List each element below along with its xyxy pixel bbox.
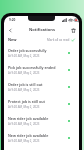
staticText: Mark all as read <box>47 38 70 42</box>
staticText: At 9:20 AM, May 2, 2023 <box>8 88 40 92</box>
staticText: At 9:20 AM, May 2, 2023 <box>8 105 40 109</box>
staticText: New rider job available <box>8 133 49 138</box>
staticText: New <box>8 37 17 42</box>
button[interactable]: Protect job is still out <box>4 95 79 112</box>
staticText: At 9:20 AM, May 2, 2023 <box>8 122 40 126</box>
staticText: At 9:20 AM, May 2, 2023 <box>8 54 40 58</box>
staticText: Order job is still out <box>8 82 43 87</box>
button[interactable]: New rider job available <box>4 129 79 146</box>
button[interactable]: Back <box>6 26 14 34</box>
button[interactable]: Pick job successfully ended <box>4 61 79 78</box>
staticText: 9:20 <box>9 18 16 22</box>
button[interactable]: Order job is still out <box>4 78 79 95</box>
staticText: Protect job is still out <box>8 99 46 104</box>
staticText: At 9:20 AM, May 2, 2023 <box>8 139 40 143</box>
button[interactable]: Order job successfully <box>4 44 79 61</box>
button[interactable]: New rider job available <box>4 112 79 129</box>
staticText: Pick job successfully ended <box>8 65 56 70</box>
button[interactable]: Delete all <box>69 26 77 34</box>
staticText: At 9:20 AM, May 2, 2023 <box>8 71 40 75</box>
button[interactable]: Mark all as read <box>47 38 75 42</box>
staticText: Order job successfully <box>8 48 47 53</box>
staticText: New rider job available <box>8 116 49 121</box>
staticText: Notifications <box>29 27 55 32</box>
